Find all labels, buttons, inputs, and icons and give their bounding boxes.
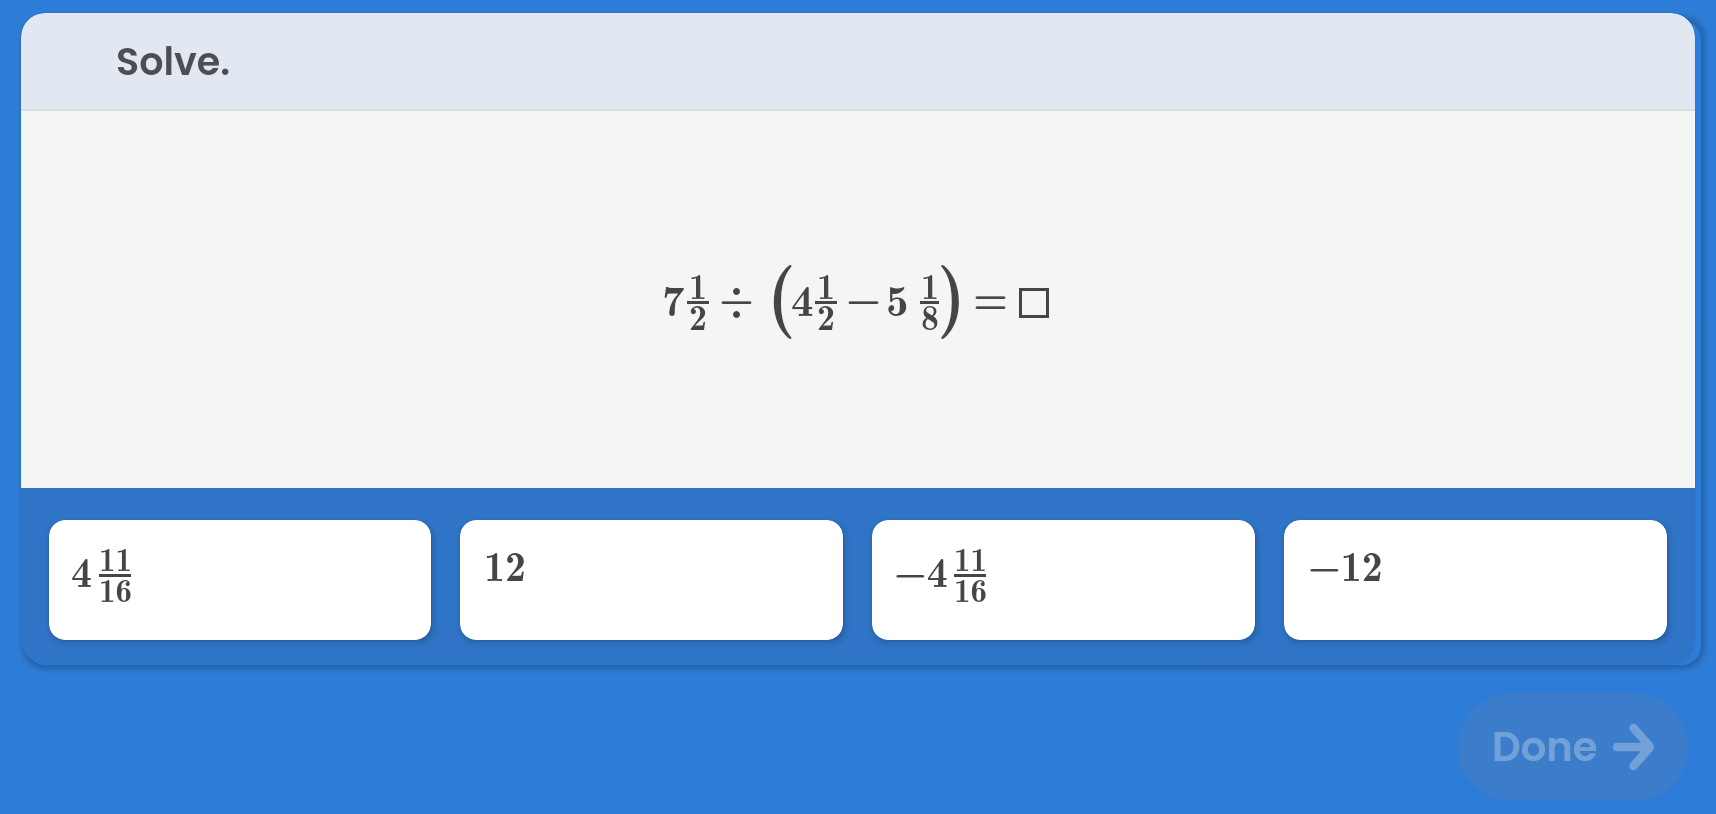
staticText: 1 <box>921 258 939 310</box>
staticText: 7 <box>662 265 683 322</box>
staticText: 16 <box>99 565 131 612</box>
staticText: 4 <box>791 265 812 322</box>
staticText: ) <box>937 237 951 294</box>
button[interactable]: Done <box>1458 693 1688 801</box>
staticText: 1 <box>817 258 835 310</box>
staticText: ÷ <box>719 263 750 320</box>
staticText: Done <box>1492 719 1598 775</box>
staticText: 2 <box>817 289 835 341</box>
staticText: 12 <box>484 533 527 588</box>
button[interactable]: −4 <box>872 520 1255 640</box>
staticText: = <box>973 263 1004 320</box>
staticText: 2 <box>689 289 707 341</box>
staticText: 5 <box>886 265 905 322</box>
button[interactable]: −12 <box>1284 520 1667 640</box>
staticText: 4 <box>71 539 93 594</box>
staticText: 11 <box>99 534 131 581</box>
staticText: 11 <box>954 534 986 581</box>
staticText: 8 <box>921 289 939 341</box>
staticText: − <box>846 263 875 320</box>
staticText: Solve. <box>116 35 231 88</box>
staticText: −4 <box>894 539 948 594</box>
button[interactable]: 12 <box>460 520 843 640</box>
staticText: ( <box>767 237 781 294</box>
staticText: 16 <box>954 565 986 612</box>
staticText: −12 <box>1308 533 1383 588</box>
button[interactable]: 4 <box>49 520 431 640</box>
staticText: 1 <box>689 258 707 310</box>
